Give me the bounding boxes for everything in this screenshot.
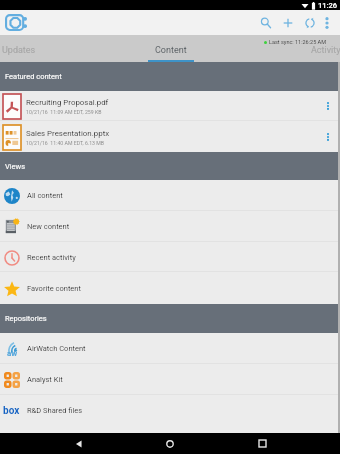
- staticText: Views: [5, 162, 26, 171]
- button[interactable]: Search: [257, 14, 275, 32]
- staticText: 10/21/16 11:40 AM EDT, 6.13 MB: [26, 140, 105, 146]
- staticText: Content: [155, 45, 187, 56]
- staticText: Recruiting Proposal.pdf: [26, 98, 109, 107]
- button[interactable]: Content: [133, 35, 209, 62]
- staticText: Analyst Kit: [27, 375, 63, 384]
- staticText: 10/21/16 11:09 AM EDT, 259 KB: [26, 109, 102, 115]
- button[interactable]: All content: [0, 180, 340, 211]
- staticText: Recent activity: [27, 253, 76, 262]
- staticText: Favorite content: [27, 284, 81, 293]
- staticText: Sales Presentation.pptx: [26, 129, 110, 138]
- staticText: Updates: [2, 45, 36, 56]
- staticText: Activity: [311, 45, 340, 56]
- staticText: Repositories: [5, 314, 47, 323]
- button[interactable]: More options for Sales Presentation.pptx: [319, 121, 337, 153]
- staticText: 11:26: [318, 1, 338, 10]
- staticText: aw: [7, 349, 18, 358]
- button[interactable]: Refresh: [301, 14, 319, 32]
- button[interactable]: New content: [0, 211, 340, 242]
- button[interactable]: Recent activity: [0, 242, 340, 272]
- button[interactable]: Add: [279, 14, 297, 32]
- staticText: box: [3, 405, 20, 417]
- button[interactable]: box: [0, 395, 340, 425]
- button[interactable]: Favorite content: [0, 272, 340, 304]
- button[interactable]: Sales Presentation.pptx: [0, 121, 340, 153]
- button[interactable]: More options for Recruiting Proposal.pdf: [319, 91, 337, 121]
- staticText: All content: [27, 191, 63, 200]
- button[interactable]: Back: [66, 433, 92, 454]
- staticText: Last sync: 11:26:25 AM: [269, 39, 326, 45]
- button[interactable]: Recruiting Proposal.pdf: [0, 91, 340, 121]
- staticText: Featured content: [5, 72, 62, 81]
- button[interactable]: Activity: [288, 35, 340, 62]
- staticText: R&D Shared files: [27, 406, 83, 415]
- button[interactable]: aw: [0, 333, 340, 364]
- button[interactable]: More options: [318, 14, 336, 32]
- staticText: AirWatch Content: [27, 344, 86, 353]
- button[interactable]: Analyst Kit: [0, 364, 340, 395]
- button[interactable]: Updates: [0, 35, 57, 62]
- button[interactable]: Content Locker: [5, 14, 27, 31]
- button[interactable]: Recent apps: [249, 433, 275, 454]
- button[interactable]: Home: [157, 433, 183, 454]
- staticText: New content: [27, 222, 70, 231]
